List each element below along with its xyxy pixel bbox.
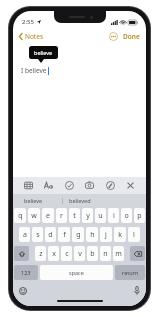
staticText: u	[98, 211, 103, 221]
button[interactable]: j	[100, 227, 112, 242]
button[interactable]: l	[128, 227, 140, 242]
button[interactable]: believe	[29, 46, 58, 59]
staticText: p	[137, 211, 142, 221]
button[interactable]: return	[115, 265, 145, 280]
button[interactable]: s	[32, 227, 43, 242]
button[interactable]: y	[82, 208, 93, 223]
staticText: Notes	[25, 32, 43, 41]
staticText: f	[63, 230, 66, 240]
button[interactable]: c	[61, 246, 72, 261]
button[interactable]: Done	[121, 30, 146, 43]
button[interactable]: Text format	[42, 179, 55, 192]
staticText: I believe	[21, 66, 47, 75]
staticText: n	[103, 249, 108, 259]
button[interactable]: o	[121, 208, 132, 223]
staticText: t	[73, 211, 76, 221]
staticText: c	[65, 249, 69, 259]
staticText: believed	[69, 197, 91, 204]
button[interactable]: Shift	[14, 246, 29, 261]
staticText: b	[90, 249, 95, 259]
staticText: believe	[34, 49, 53, 56]
staticText: i	[113, 211, 115, 221]
button[interactable]: p	[134, 208, 145, 223]
staticText: h	[90, 230, 95, 240]
staticText: 123	[21, 269, 31, 276]
staticText: q	[18, 211, 23, 221]
button[interactable]: 123	[14, 265, 38, 280]
staticText: g	[76, 230, 81, 240]
staticText: o	[124, 211, 129, 221]
staticText: j	[105, 230, 107, 240]
staticText: return	[122, 269, 139, 276]
button[interactable]: Notes	[13, 30, 47, 43]
button[interactable]: b	[87, 246, 98, 261]
button[interactable]: z	[35, 246, 46, 261]
staticText: x	[52, 249, 56, 259]
button[interactable]: Dictate	[132, 284, 142, 297]
staticText: s	[36, 230, 40, 240]
staticText: z	[39, 249, 43, 259]
button[interactable]: h	[86, 227, 98, 242]
staticText: l	[133, 230, 135, 240]
button[interactable]: r	[56, 208, 67, 223]
staticText: w	[31, 211, 37, 221]
button[interactable]: n	[100, 246, 111, 261]
button[interactable]: space	[40, 265, 113, 280]
staticText: 2:55	[22, 18, 34, 26]
button[interactable]: q	[14, 208, 26, 223]
button[interactable]: w	[28, 208, 40, 223]
staticText: e	[46, 211, 50, 221]
staticText: Done	[123, 32, 140, 41]
button[interactable]: Close keyboard	[124, 179, 137, 192]
button[interactable]: Camera	[83, 179, 96, 192]
button[interactable]: Markup	[104, 179, 117, 192]
button[interactable]: d	[45, 227, 56, 242]
staticText: m	[115, 249, 122, 259]
button[interactable]: believe	[13, 194, 62, 207]
button[interactable]: t	[69, 208, 80, 223]
button[interactable]: m	[113, 246, 124, 261]
button[interactable]: More options	[106, 29, 121, 44]
button[interactable]: Table	[22, 179, 35, 192]
staticText: k	[118, 230, 122, 240]
button[interactable]: e	[42, 208, 54, 223]
button[interactable]: a	[19, 227, 30, 242]
button[interactable]: Backspace	[130, 246, 145, 261]
button[interactable]: f	[58, 227, 70, 242]
staticText: believe	[24, 197, 43, 204]
button[interactable]: v	[74, 246, 85, 261]
staticText: r	[60, 211, 63, 221]
button[interactable]: Checklist	[63, 179, 76, 192]
button[interactable]: Emoji	[17, 285, 29, 297]
button[interactable]: u	[95, 208, 106, 223]
button[interactable]: k	[114, 227, 126, 242]
button[interactable]: g	[72, 227, 84, 242]
staticText: a	[23, 230, 27, 240]
button[interactable]: believed	[63, 194, 112, 207]
button[interactable]: x	[48, 246, 59, 261]
staticText: y	[86, 211, 90, 221]
staticText: v	[78, 249, 82, 259]
button[interactable]: i	[108, 208, 119, 223]
staticText: space	[69, 269, 84, 276]
staticText: d	[48, 230, 53, 240]
